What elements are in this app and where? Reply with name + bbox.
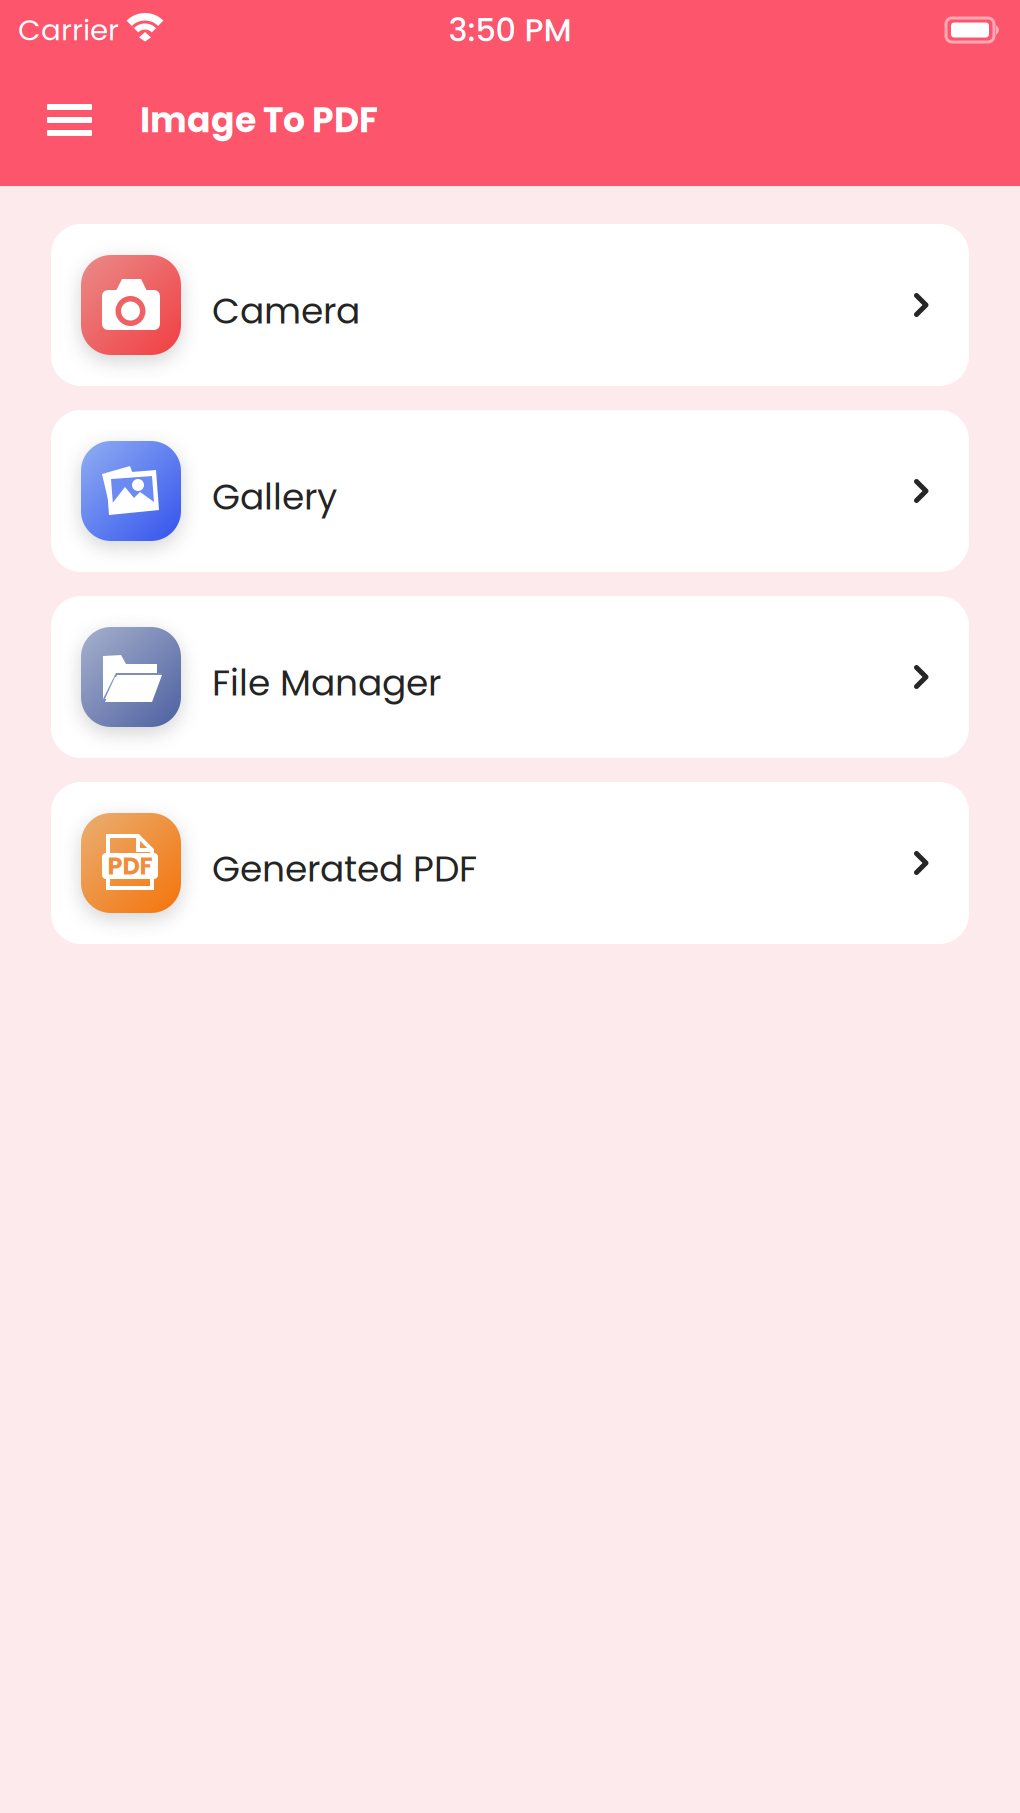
button[interactable]: Menu — [0, 86, 106, 154]
staticText: File Manager — [212, 658, 441, 708]
staticText: Carrier — [18, 9, 119, 51]
button[interactable]: PDF — [51, 782, 969, 944]
staticText: Image To PDF — [140, 96, 378, 144]
staticText: Generated PDF — [212, 844, 477, 894]
staticText: Camera — [212, 286, 360, 336]
staticText: Gallery — [212, 472, 337, 522]
button[interactable]: File Manager — [51, 596, 969, 758]
button[interactable]: Camera — [51, 224, 969, 386]
button[interactable]: Gallery — [51, 410, 969, 572]
staticText: 3:50 PM — [448, 8, 571, 52]
staticText: PDF — [107, 849, 152, 883]
